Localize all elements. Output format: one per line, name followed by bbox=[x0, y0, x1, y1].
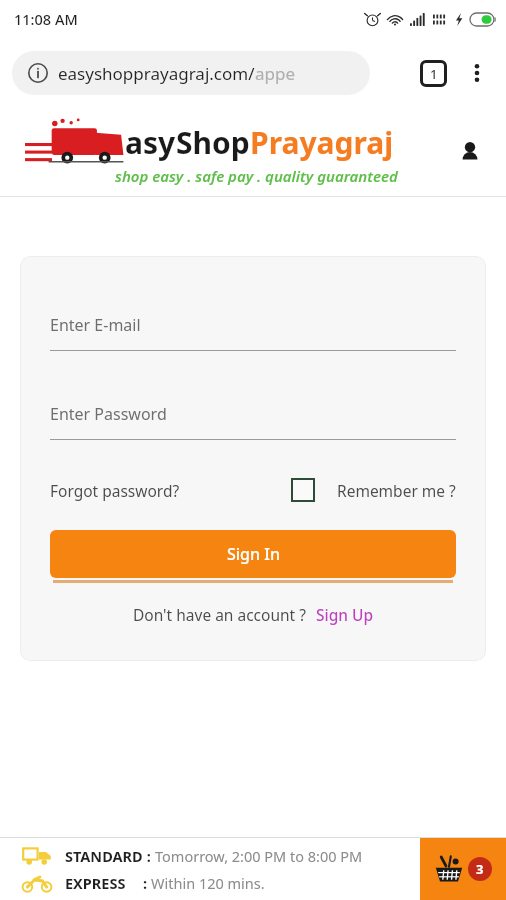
button[interactable]: Sign Up bbox=[316, 604, 374, 625]
button[interactable]: Enter E-mail bbox=[50, 314, 456, 351]
staticText: easyshopprayagraj.com/ bbox=[58, 62, 255, 85]
staticText: Prayagraj bbox=[250, 122, 394, 163]
staticText: Tomorrow, 2:00 PM to 8:00 PM bbox=[155, 846, 363, 866]
staticText: EXPRESS bbox=[65, 873, 126, 893]
staticText: Sign Up bbox=[316, 604, 374, 625]
staticText: STANDARD bbox=[65, 846, 143, 866]
button[interactable]: Cart, 3 items bbox=[420, 838, 506, 900]
staticText: : bbox=[143, 846, 155, 866]
button[interactable]: Sign In bbox=[50, 530, 456, 578]
staticText: shop easy . safe pay . quality guarantee… bbox=[115, 166, 398, 186]
staticText: Don't have an account ? bbox=[133, 604, 306, 625]
staticText: Within 120 mins. bbox=[151, 873, 265, 893]
staticText: Enter E-mail bbox=[50, 314, 141, 336]
staticText: 3 bbox=[476, 860, 484, 878]
staticText: 1 bbox=[430, 65, 438, 83]
button[interactable]: Tabs bbox=[412, 52, 454, 94]
button[interactable]: Menu bbox=[16, 130, 60, 174]
button[interactable]: Forgot password? bbox=[50, 476, 180, 505]
staticText: 11:08 AM bbox=[14, 9, 78, 29]
button[interactable]: Account bbox=[448, 130, 492, 174]
staticText: Remember me ? bbox=[337, 480, 456, 501]
staticText: : bbox=[143, 873, 151, 893]
button[interactable]: easyshopprayagraj.com/ bbox=[12, 51, 370, 95]
button[interactable]: Remember me ? bbox=[291, 474, 456, 506]
staticText: Enter Password bbox=[50, 403, 167, 425]
staticText: Forgot password? bbox=[50, 480, 180, 501]
staticText: Shop bbox=[176, 122, 250, 163]
button[interactable]: Enter Password bbox=[50, 403, 456, 440]
staticText: appe bbox=[255, 62, 296, 85]
staticText: asy bbox=[125, 122, 176, 163]
button[interactable]: More options bbox=[454, 50, 500, 96]
staticText: Sign In bbox=[227, 543, 280, 565]
